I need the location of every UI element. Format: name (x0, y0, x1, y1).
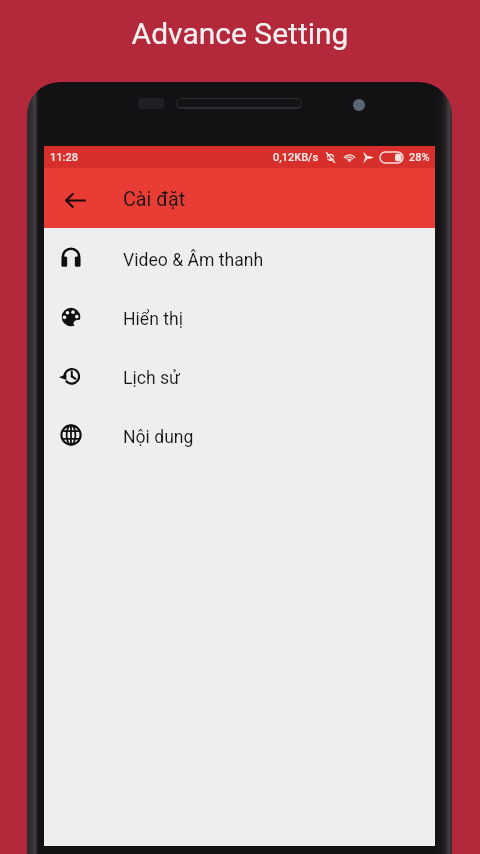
staticText: 11:28 (50, 151, 78, 164)
staticText: Advance Setting (0, 16, 480, 51)
staticText: Lịch sử (123, 368, 180, 389)
staticText: Video & Âm thanh (123, 250, 264, 271)
staticText: 28% (409, 151, 430, 164)
button[interactable]: Back (51, 176, 99, 224)
button[interactable]: Video & Âm thanh (44, 228, 435, 287)
button[interactable]: Nội dung (44, 405, 435, 464)
staticText: 0,12KB/s (273, 151, 319, 164)
staticText: Hiển thị (123, 309, 183, 330)
button[interactable]: Lịch sử (44, 346, 435, 405)
staticText: Nội dung (123, 427, 194, 448)
button[interactable]: Hiển thị (44, 287, 435, 346)
staticText: Cài đặt (123, 188, 186, 211)
